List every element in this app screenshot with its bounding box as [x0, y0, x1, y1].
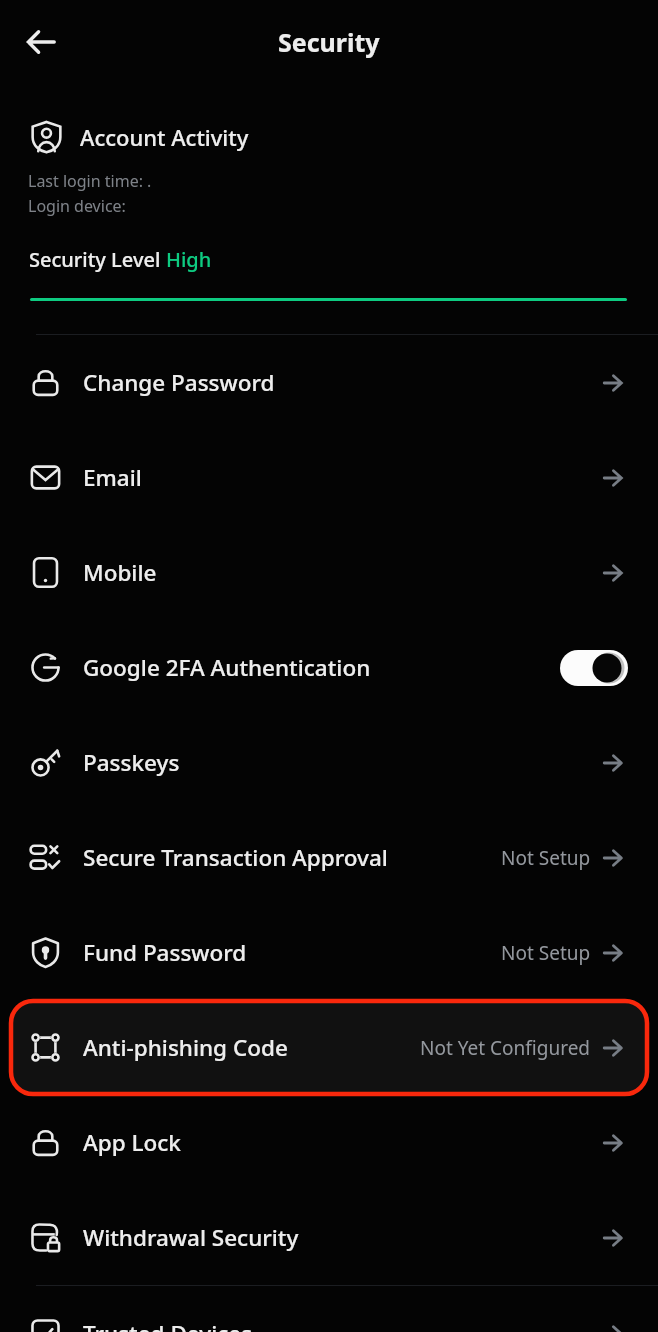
staticText: Not Setup	[501, 845, 591, 871]
staticText: Login device:	[28, 195, 126, 217]
staticText: Fund Password	[83, 937, 247, 968]
staticText: Mobile	[83, 557, 157, 588]
button[interactable]: Trusted Devices	[0, 1286, 658, 1332]
staticText: High	[166, 246, 212, 273]
button[interactable]: Change Password	[0, 335, 658, 430]
button[interactable]: Withdrawal Security	[0, 1190, 658, 1285]
staticText: App Lock	[83, 1127, 181, 1158]
button[interactable]: Passkeys	[0, 715, 658, 810]
button[interactable]: Fund Password	[0, 905, 658, 1000]
staticText: Passkeys	[83, 747, 180, 778]
button[interactable]: Secure Transaction Approval	[0, 810, 658, 905]
staticText: Security	[278, 25, 380, 59]
staticText: Google 2FA Authentication	[83, 652, 371, 683]
staticText: Anti-phishing Code	[83, 1032, 288, 1063]
button[interactable]: Email	[0, 430, 658, 525]
staticText: Last login time: .	[28, 170, 152, 192]
staticText: Not Setup	[501, 940, 591, 966]
staticText: Security Level	[29, 246, 166, 273]
staticText: Change Password	[83, 367, 275, 398]
button[interactable]: Google 2FA Authentication	[0, 620, 658, 715]
button[interactable]: App Lock	[0, 1095, 658, 1190]
staticText: Not Yet Configured	[420, 1035, 591, 1061]
button[interactable]: Anti-phishing Code	[0, 1000, 658, 1095]
staticText: Email	[83, 462, 142, 493]
staticText: Account Activity	[80, 122, 249, 152]
staticText: Withdrawal Security	[83, 1222, 299, 1253]
button[interactable]: Account Activity	[30, 120, 658, 153]
button[interactable]	[25, 25, 59, 59]
button[interactable]: Mobile	[0, 525, 658, 620]
staticText: Trusted Devices	[83, 1318, 253, 1332]
staticText: Secure Transaction Approval	[83, 842, 388, 873]
